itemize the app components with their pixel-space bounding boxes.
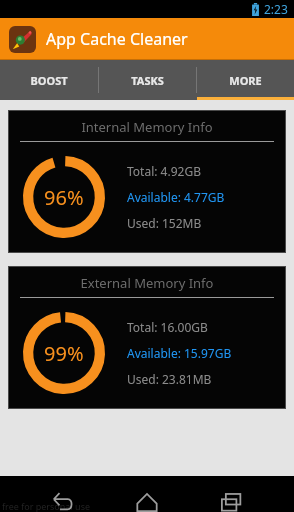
staticText: free for personal use [2,500,91,512]
staticText: BOOST [30,73,68,88]
staticText: 99% [44,340,84,367]
button[interactable]: MORE [197,60,294,100]
button[interactable]: External Memory Info [9,267,285,408]
other: App icon [9,26,36,53]
staticText: Available: 15.97GB [127,345,232,361]
staticText: Used: 23.81MB [127,371,212,387]
staticText: Total: 4.92GB [127,163,201,179]
staticText: 2:23 [264,1,288,17]
button[interactable]: Back [41,476,85,512]
button[interactable]: BOOST [0,60,98,100]
staticText: 96% [44,184,84,211]
staticText: TASKS [131,73,164,88]
staticText: Internal Memory Info [9,118,285,136]
staticText: MORE [229,73,262,88]
staticText: Available: 4.77GB [127,189,225,205]
staticText: External Memory Info [9,274,285,292]
staticText: Used: 152MB [127,215,202,231]
staticText: App Cache Cleaner [46,28,188,50]
button[interactable]: TASKS [99,60,196,100]
button[interactable]: Internal Memory Info [9,111,285,252]
button[interactable]: Home [125,476,169,512]
button[interactable]: Recent apps [210,476,254,512]
staticText: Total: 16.00GB [127,319,208,335]
